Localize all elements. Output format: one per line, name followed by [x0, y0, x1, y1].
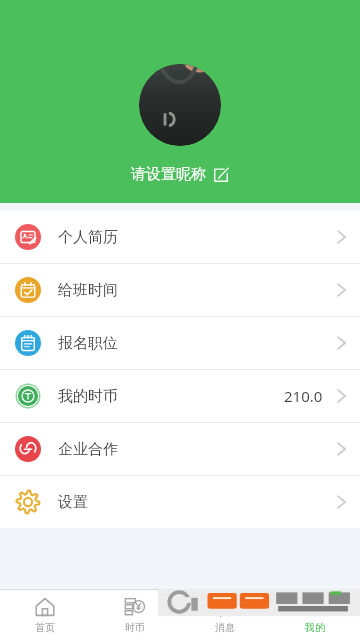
button[interactable]: 我的时币: [0, 370, 360, 422]
staticText: 我的: [305, 621, 325, 634]
button[interactable]: 给班时间: [0, 264, 360, 316]
staticText: 210.0: [284, 386, 323, 406]
staticText: 设置: [58, 493, 88, 512]
button[interactable]: Profile photo: [139, 64, 221, 146]
staticText: 消息: [215, 621, 235, 634]
staticText: 首页: [35, 621, 55, 634]
staticText: 报名职位: [58, 334, 118, 353]
button[interactable]: 报名职位: [0, 317, 360, 369]
button[interactable]: 我的: [270, 590, 360, 640]
staticText: 企业合作: [58, 440, 118, 459]
button[interactable]: 消息: [180, 590, 270, 640]
button[interactable]: 首页: [0, 590, 90, 640]
button[interactable]: 请设置昵称: [121, 162, 239, 187]
button[interactable]: 企业合作: [0, 423, 360, 475]
staticText: 请设置昵称: [131, 165, 206, 184]
button[interactable]: 个人简历: [0, 211, 360, 263]
button[interactable]: 时币: [90, 590, 180, 640]
staticText: 时币: [125, 621, 145, 634]
staticText: 个人简历: [58, 228, 118, 247]
button[interactable]: 设置: [0, 476, 360, 528]
staticText: 给班时间: [58, 281, 118, 300]
staticText: 我的时币: [58, 387, 118, 406]
